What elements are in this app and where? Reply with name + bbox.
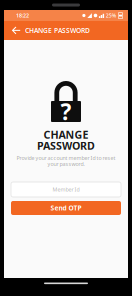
staticText: PASSWORD <box>37 138 95 153</box>
staticText: Member Id <box>52 186 79 193</box>
staticText: your password. <box>47 160 84 168</box>
staticText: CHANGE <box>43 127 88 142</box>
button[interactable]: Send OTP <box>11 201 121 215</box>
staticText: 25% <box>106 12 117 19</box>
staticText: ? <box>60 96 71 126</box>
staticText: 18:22 <box>16 12 29 19</box>
staticText: Send OTP <box>50 204 81 212</box>
staticText: CHANGE PASSWORD <box>25 26 90 35</box>
button[interactable]: Back <box>7 21 25 40</box>
staticText: Provide your account member Id to reset <box>16 154 115 162</box>
